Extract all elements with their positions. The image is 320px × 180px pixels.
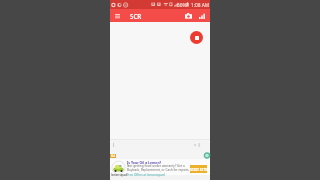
- button[interactable]: Stop recording: [190, 31, 203, 44]
- staticText: SCR: [130, 12, 142, 20]
- staticText: Ad: [111, 154, 115, 158]
- staticText: Buyback, Replacement, or Cash for repair…: [127, 168, 190, 172]
- button[interactable]: Open navigation menu: [112, 10, 123, 21]
- staticText: Is Your Oil a Lemon?: [127, 160, 162, 165]
- button[interactable]: Statistics: [196, 10, 208, 22]
- button[interactable]: Camera: [182, 10, 194, 22]
- staticText: 1:08 AM: [191, 2, 210, 9]
- button[interactable]: Ad choices: [203, 152, 210, 159]
- button[interactable]: VISIT SITE: [190, 165, 207, 173]
- staticText: VISIT SITE: [190, 167, 207, 172]
- staticText: Not getting fixed under warranty? Get a: [127, 164, 185, 168]
- staticText: lemon squad: [111, 173, 128, 176]
- staticText: Free Offers at lemonsquad: [127, 173, 165, 177]
- staticText: 66%: [177, 2, 187, 9]
